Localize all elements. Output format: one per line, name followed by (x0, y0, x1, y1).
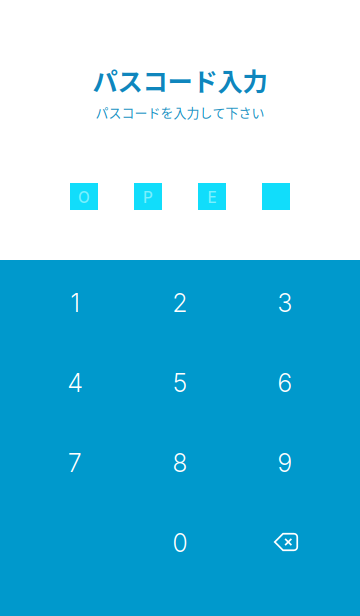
staticText: 5 (173, 368, 187, 398)
button[interactable]: 8 (127, 422, 232, 502)
staticText: 1 (70, 288, 79, 318)
staticText: 3 (277, 288, 292, 318)
staticText: 0 (172, 528, 187, 558)
button[interactable]: 9 (232, 422, 337, 502)
button[interactable]: 1 (22, 262, 127, 342)
staticText: 8 (172, 448, 187, 478)
staticText: パスコード入力 (92, 62, 267, 98)
button[interactable]: 3 (232, 262, 337, 342)
staticText: 7 (68, 448, 82, 478)
staticText: 4 (67, 368, 82, 398)
staticText: 2 (172, 288, 187, 318)
staticText: P (143, 188, 153, 207)
staticText: E (207, 188, 216, 207)
button[interactable]: 2 (127, 262, 232, 342)
button[interactable]: 0 (127, 502, 232, 582)
button[interactable]: 4 (22, 342, 127, 422)
button[interactable]: 7 (22, 422, 127, 502)
button[interactable]: 5 (127, 342, 232, 422)
button[interactable]: Delete (232, 502, 337, 582)
staticText: O (78, 188, 90, 207)
staticText: パスコードを入力して下さい (95, 103, 264, 121)
staticText: 9 (277, 448, 292, 478)
button[interactable]: 6 (232, 342, 337, 422)
staticText: 6 (277, 368, 292, 398)
